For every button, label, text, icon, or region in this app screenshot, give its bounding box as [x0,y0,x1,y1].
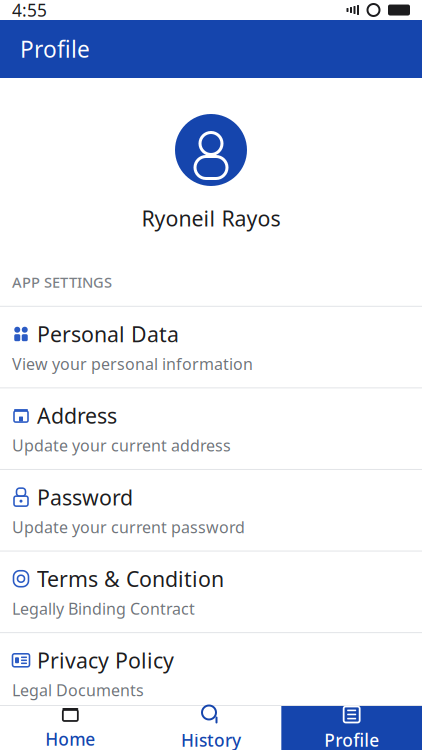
button[interactable]: Profile [281,706,422,750]
staticText: Profile [20,34,90,64]
staticText: Legally Binding Contract [12,598,195,619]
staticText: Terms & Condition [37,564,224,593]
staticText: Update your current password [12,516,245,537]
button[interactable]: History [141,706,281,750]
staticText: 4:55 [12,0,47,21]
staticText: Personal Data [37,320,179,348]
button[interactable]: Personal Data [0,306,422,387]
button[interactable]: Privacy Policy [0,632,422,714]
staticText: APP SETTINGS [12,272,112,292]
button[interactable]: Home [0,706,141,750]
staticText: Privacy Policy [37,646,174,674]
button[interactable]: Address [0,387,422,469]
staticText: Legal Documents [12,679,144,701]
staticText: Password [37,483,133,511]
staticText: Profile [324,728,379,750]
staticText: Update your current address [12,435,231,456]
button[interactable]: Password [0,469,422,551]
button[interactable]: SIGN OUT [34,749,388,750]
staticText: Address [37,401,117,430]
staticText: History [181,728,241,750]
staticText: Home [45,727,95,750]
staticText: Ryoneil Rayos [141,204,280,232]
staticText: View your personal information [12,353,253,374]
button[interactable]: Terms & Condition [0,550,422,632]
